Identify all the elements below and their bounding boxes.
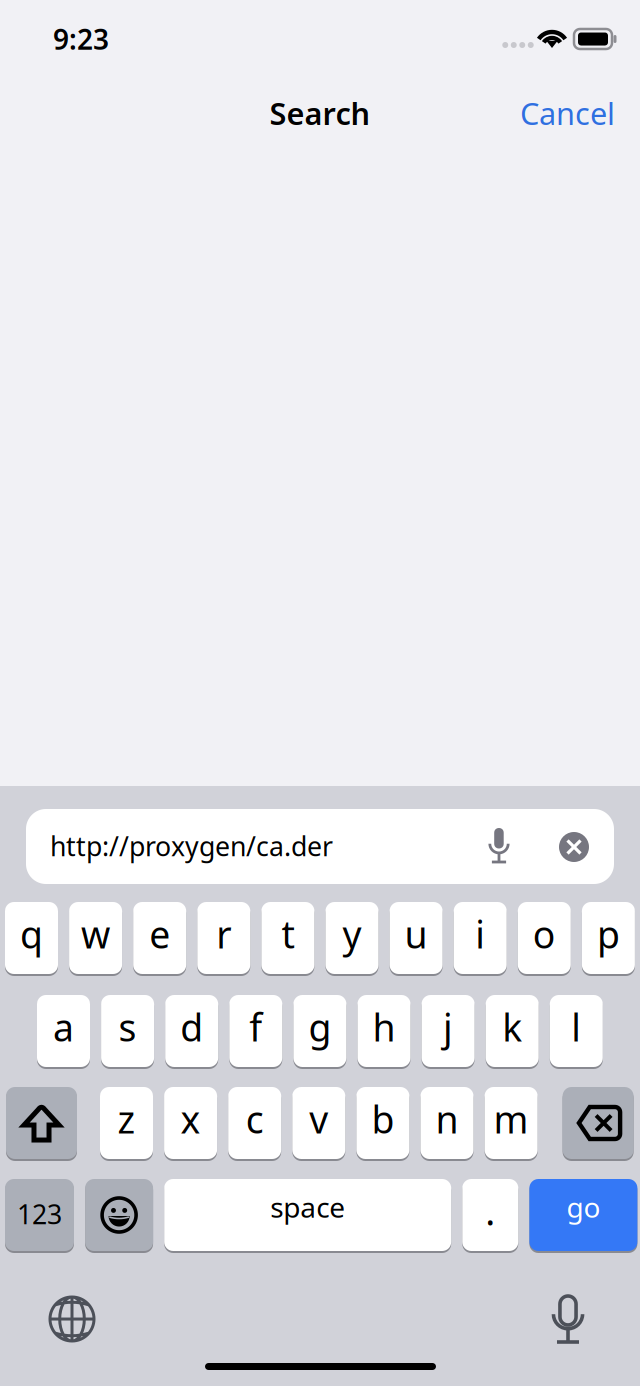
staticText: x bbox=[181, 1094, 201, 1144]
button[interactable]: 123 bbox=[5, 1179, 74, 1253]
button[interactable]: q bbox=[5, 902, 58, 976]
staticText: o bbox=[533, 909, 556, 959]
staticText: y bbox=[342, 909, 361, 959]
button[interactable]: k bbox=[486, 995, 539, 1069]
button[interactable]: n bbox=[420, 1087, 473, 1161]
button[interactable]: d bbox=[165, 995, 218, 1069]
staticText: l bbox=[571, 1002, 581, 1052]
button[interactable] bbox=[6, 1087, 77, 1161]
staticText: s bbox=[119, 1002, 137, 1052]
staticText: j bbox=[443, 1002, 453, 1052]
button[interactable]: b bbox=[356, 1087, 409, 1161]
staticText: . bbox=[485, 1186, 495, 1236]
staticText: space bbox=[270, 1188, 345, 1226]
button[interactable]: f bbox=[229, 995, 282, 1069]
staticText: 9:23 bbox=[53, 20, 109, 58]
staticText: a bbox=[53, 1002, 74, 1052]
staticText: c bbox=[246, 1094, 264, 1144]
staticText: r bbox=[216, 909, 231, 959]
staticText: b bbox=[371, 1094, 394, 1144]
button[interactable]: a bbox=[37, 995, 90, 1069]
button[interactable]: Cancel bbox=[485, 86, 615, 140]
staticText: k bbox=[502, 1002, 522, 1052]
button[interactable]: l bbox=[550, 995, 603, 1069]
staticText: v bbox=[309, 1094, 328, 1144]
button[interactable] bbox=[563, 1087, 634, 1161]
button[interactable]: h bbox=[357, 995, 410, 1069]
staticText: p bbox=[597, 909, 620, 959]
button[interactable]: x bbox=[164, 1087, 217, 1161]
staticText: t bbox=[281, 909, 294, 959]
button[interactable]: i bbox=[454, 902, 507, 976]
button[interactable]: u bbox=[390, 902, 443, 976]
staticText: go bbox=[566, 1188, 600, 1226]
staticText: m bbox=[494, 1094, 529, 1144]
button[interactable]: j bbox=[422, 995, 475, 1069]
staticText: z bbox=[117, 1094, 135, 1144]
staticText: w bbox=[81, 909, 110, 959]
staticText: n bbox=[435, 1094, 458, 1144]
button[interactable]: t bbox=[261, 902, 314, 976]
button[interactable]: e bbox=[133, 902, 186, 976]
button[interactable]: Dictate bbox=[472, 817, 526, 877]
staticText: 123 bbox=[17, 1196, 62, 1232]
staticText: i bbox=[475, 909, 485, 959]
button[interactable]: Dictate bbox=[530, 1283, 606, 1355]
button[interactable]: o bbox=[518, 902, 571, 976]
staticText: h bbox=[372, 1002, 395, 1052]
button[interactable]: w bbox=[69, 902, 122, 976]
staticText: f bbox=[249, 1002, 262, 1052]
button[interactable]: v bbox=[292, 1087, 345, 1161]
button[interactable]: g bbox=[293, 995, 346, 1069]
staticText: Cancel bbox=[520, 93, 615, 133]
staticText: e bbox=[149, 909, 170, 959]
staticText: q bbox=[20, 909, 43, 959]
staticText: d bbox=[180, 1002, 203, 1052]
staticText: g bbox=[308, 1002, 331, 1052]
staticText: http://proxygen/ca.der bbox=[50, 828, 333, 864]
button[interactable]: z bbox=[100, 1087, 153, 1161]
button[interactable] bbox=[85, 1179, 153, 1253]
staticText: Search bbox=[269, 93, 370, 133]
button[interactable]: p bbox=[582, 902, 635, 976]
button[interactable]: m bbox=[485, 1087, 538, 1161]
button[interactable]: . bbox=[462, 1179, 518, 1253]
button[interactable]: c bbox=[228, 1087, 281, 1161]
button[interactable]: Next keyboard bbox=[34, 1283, 110, 1355]
button[interactable]: space bbox=[164, 1179, 451, 1253]
button[interactable]: s bbox=[101, 995, 154, 1069]
button[interactable]: r bbox=[197, 902, 250, 976]
button[interactable]: go bbox=[529, 1179, 637, 1253]
button[interactable]: y bbox=[325, 902, 378, 976]
button[interactable]: Clear text bbox=[547, 817, 601, 877]
staticText: u bbox=[405, 909, 428, 959]
